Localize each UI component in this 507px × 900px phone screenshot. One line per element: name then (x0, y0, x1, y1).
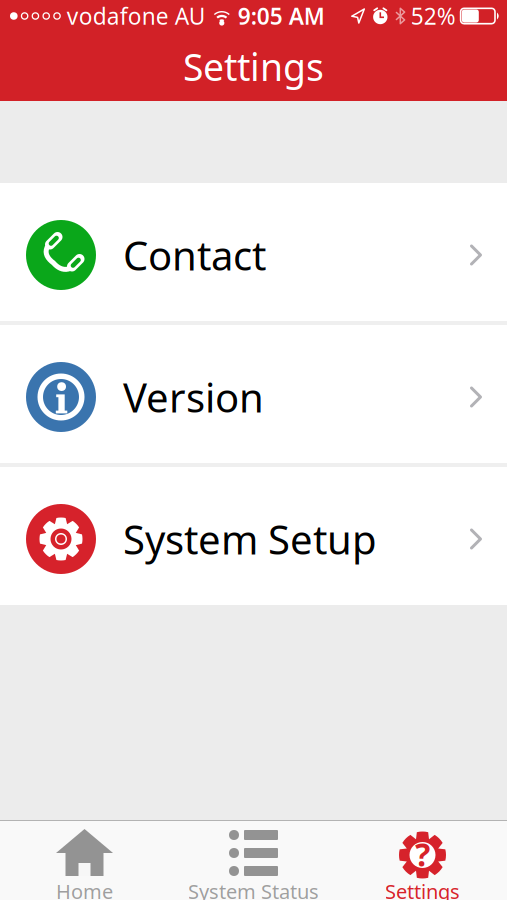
button[interactable]: ? (338, 821, 507, 900)
staticText: System Status (188, 878, 319, 900)
button[interactable]: Home (0, 821, 169, 900)
button[interactable]: Version (0, 325, 507, 463)
staticText: System Setup (123, 512, 377, 565)
button[interactable]: System Setup (0, 467, 507, 605)
staticText: Contact (123, 228, 266, 281)
staticText: Settings (183, 42, 324, 91)
staticText: vodafone AU (67, 1, 206, 31)
staticText: Settings (385, 878, 460, 900)
button[interactable]: System Status (169, 821, 338, 900)
staticText: Home (56, 878, 113, 900)
staticText: 9:05 AM (238, 1, 325, 31)
staticText: ? (415, 833, 430, 875)
button[interactable]: Contact (0, 183, 507, 321)
staticText: 52% (411, 1, 456, 31)
staticText: Version (123, 370, 264, 423)
